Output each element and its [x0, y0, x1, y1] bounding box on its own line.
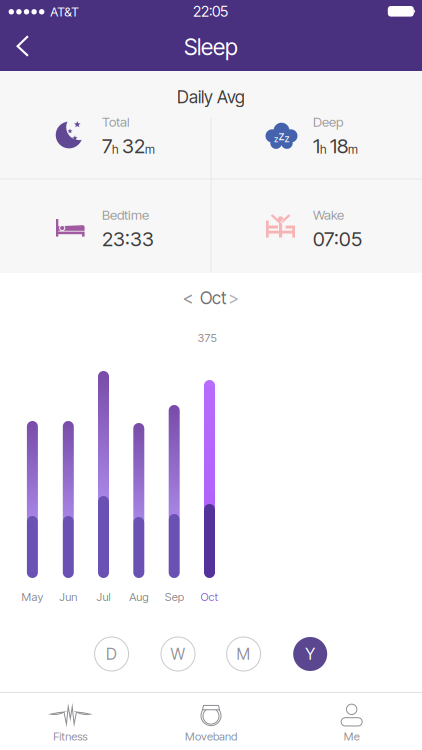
button[interactable]: Previous month [173, 283, 203, 313]
staticText: z [284, 132, 289, 145]
staticText: May [21, 590, 43, 604]
staticText: Total [102, 114, 130, 130]
button[interactable]: W [161, 637, 195, 671]
staticText: Me [344, 730, 360, 743]
staticText: Oct [200, 590, 218, 604]
staticText: AT&T [50, 4, 79, 19]
staticText: 32 [122, 134, 145, 158]
staticText: h [320, 142, 327, 157]
staticText: Wake [313, 207, 344, 223]
staticText: 1 [313, 134, 320, 158]
button[interactable]: Y [293, 637, 327, 671]
staticText: 375 [197, 331, 216, 345]
staticText: z [274, 134, 278, 144]
button[interactable]: M [227, 637, 261, 671]
staticText: M [237, 644, 251, 664]
staticText: 18 [330, 134, 348, 158]
button[interactable]: Fitness [0, 690, 141, 750]
button[interactable]: Moveband [141, 690, 281, 750]
staticText: Oct [200, 287, 226, 308]
button[interactable]: Next month [219, 283, 249, 313]
staticText: 23:33 [102, 227, 154, 251]
staticText: h [112, 142, 119, 157]
staticText: Deep [313, 114, 343, 130]
staticText: Fitness [53, 730, 87, 743]
staticText: Daily Avg [177, 86, 245, 107]
staticText: 7 [102, 134, 112, 158]
button[interactable]: Back [0, 29, 46, 67]
staticText: < [182, 287, 193, 308]
staticText: Bedtime [102, 207, 149, 223]
staticText: Jul [96, 590, 110, 604]
staticText: m [145, 142, 155, 157]
staticText: W [170, 644, 185, 664]
staticText: 07:05 [313, 227, 362, 251]
staticText: > [228, 287, 239, 308]
staticText: Y [305, 644, 315, 664]
staticText: Aug [129, 590, 148, 604]
staticText: z [278, 129, 284, 143]
staticText: Moveband [185, 730, 237, 743]
staticText: 22:05 [193, 2, 228, 20]
staticText: Sleep [184, 33, 238, 61]
staticText: Sep [165, 590, 184, 604]
staticText: D [106, 644, 117, 664]
staticText: m [348, 142, 358, 157]
staticText: Jun [59, 590, 77, 604]
button[interactable]: Me [281, 690, 422, 750]
button[interactable]: D [95, 637, 129, 671]
